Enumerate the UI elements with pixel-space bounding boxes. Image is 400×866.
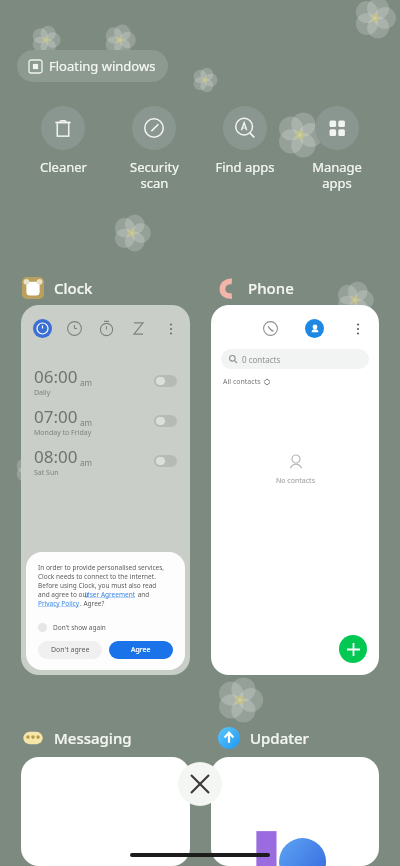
button[interactable]: Privacy Policy [38, 599, 80, 608]
staticText: Sat Sun [34, 468, 59, 478]
button[interactable]: Clock [22, 275, 93, 301]
staticText: Don't show again [53, 623, 106, 632]
staticText: . Agree? [80, 599, 105, 608]
staticText: Floating windows [49, 57, 156, 75]
staticText: Clock [54, 278, 93, 298]
staticText: Phone [248, 278, 294, 298]
staticText: Daily [34, 388, 51, 398]
button[interactable]: Updater [218, 725, 309, 751]
button[interactable] [21, 757, 190, 866]
staticText: Monday to Friday [34, 428, 92, 438]
staticText: Security scan [130, 158, 179, 191]
staticText: In order to provide personalised service… [38, 563, 165, 599]
staticText: All contacts [223, 377, 261, 387]
button[interactable]: Don't show again [38, 623, 106, 632]
button[interactable]: Security scan [112, 106, 196, 191]
button[interactable]: More options [161, 319, 180, 338]
button[interactable]: Contacts [305, 319, 324, 338]
button[interactable]: Add contact [339, 635, 367, 663]
staticText: Find apps [215, 158, 275, 176]
button[interactable]: All contacts [223, 377, 270, 387]
button[interactable]: Manage apps [295, 106, 379, 191]
button[interactable]: Close all [178, 762, 222, 806]
button[interactable]: Toggle alarm [154, 455, 177, 467]
button[interactable]: User Agreement [85, 590, 136, 599]
button[interactable]: Toggle alarm [154, 375, 177, 387]
button[interactable]: Keypad [211, 305, 379, 675]
button[interactable]: Agree [109, 641, 173, 659]
staticText: 0 contacts [242, 354, 281, 365]
button[interactable]: Alarm [33, 319, 52, 338]
button[interactable]: Cleaner [21, 106, 105, 176]
button[interactable]: Toggle alarm [154, 415, 177, 427]
button[interactable]: 0 contacts [221, 349, 369, 369]
button[interactable]: Phone [216, 275, 294, 301]
staticText: 07:00 [34, 405, 78, 428]
button[interactable]: Find apps [203, 106, 287, 176]
staticText: 06:00 [34, 365, 78, 388]
staticText: am [80, 417, 92, 428]
staticText: am [80, 457, 92, 468]
button[interactable]: Tab [65, 319, 84, 338]
button[interactable]: Floating windows [17, 50, 168, 82]
button[interactable] [211, 757, 379, 866]
button[interactable]: Tab [129, 319, 148, 338]
button[interactable]: More options [348, 319, 367, 338]
staticText: am [80, 377, 92, 388]
staticText: 08:00 [34, 445, 78, 468]
staticText: Cleaner [40, 158, 87, 176]
button[interactable]: Messaging [22, 725, 132, 751]
staticText: No contacts [276, 476, 315, 486]
staticText: Manage apps [312, 158, 362, 191]
staticText: and [136, 590, 150, 599]
staticText: Updater [250, 728, 309, 748]
staticText: Messaging [54, 728, 132, 748]
staticText: Don't agree [51, 645, 90, 655]
button[interactable]: Alarm [21, 305, 190, 675]
staticText: Agree [131, 645, 151, 655]
button[interactable]: Tab [97, 319, 116, 338]
button[interactable]: Keypad [261, 319, 280, 338]
button[interactable]: Don't agree [38, 641, 102, 659]
